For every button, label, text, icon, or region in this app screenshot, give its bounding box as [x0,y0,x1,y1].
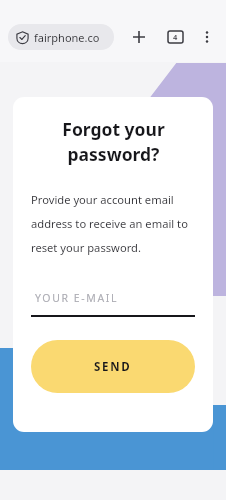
button[interactable]: YOUR E-MAIL [31,291,195,317]
staticText: YOUR E-MAIL [35,291,118,305]
staticText: fairphone.com/v [34,30,106,45]
button[interactable]: Tabs, 4 open [162,24,188,50]
staticText: Provide your account email address to re… [31,192,195,255]
button[interactable]: More options [194,24,220,50]
staticText: 4 [173,32,178,42]
staticText: SEND [94,359,132,375]
button[interactable]: SEND [31,340,195,393]
button[interactable]: New tab [126,24,152,50]
button[interactable]: fairphone.com/v [8,24,114,50]
staticText: Forgot your password? [62,117,165,166]
